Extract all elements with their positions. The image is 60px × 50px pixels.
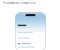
button[interactable] xyxy=(18,43,43,44)
button[interactable] xyxy=(18,32,43,33)
staticText: Podstawowe ustawienia xyxy=(3,1,35,5)
button[interactable] xyxy=(18,47,43,47)
